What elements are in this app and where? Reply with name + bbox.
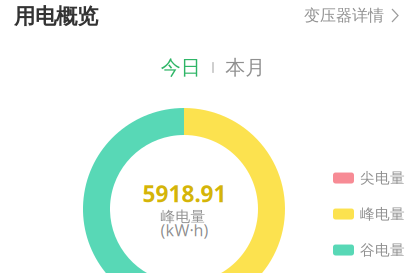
- staticText: 峰电量: [360, 205, 405, 223]
- button[interactable]: 谷电量: [333, 243, 405, 257]
- button[interactable]: 本月: [214, 54, 277, 80]
- staticText: 用电概览: [14, 3, 98, 30]
- staticText: 变压器详情: [304, 6, 384, 25]
- staticText: 尖电量: [360, 169, 405, 187]
- staticText: 峰电量: [160, 207, 205, 225]
- button[interactable]: 今日: [149, 54, 212, 80]
- staticText: 谷电量: [360, 241, 405, 259]
- staticText: (kW·h): [160, 219, 208, 241]
- staticText: 本月: [225, 55, 265, 80]
- button[interactable]: 峰电量: [333, 207, 405, 221]
- staticText: 5918.91: [142, 178, 226, 208]
- button[interactable]: 尖电量: [333, 171, 405, 185]
- button[interactable]: 变压器详情: [304, 6, 399, 25]
- staticText: 今日: [161, 55, 201, 80]
